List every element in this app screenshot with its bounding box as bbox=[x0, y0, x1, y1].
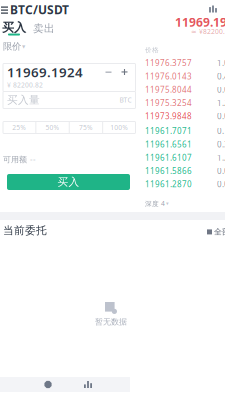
staticText: ¥ 82200.82 bbox=[7, 80, 43, 89]
staticText: 11961.2870 bbox=[145, 179, 192, 189]
button[interactable]: 买入 bbox=[7, 174, 130, 190]
staticText: 11976.3757 bbox=[145, 58, 192, 68]
staticText: 0.0041 bbox=[217, 166, 225, 176]
button[interactable]: 深度 4 bbox=[145, 199, 169, 208]
button[interactable]: 11961.6561 bbox=[139, 140, 225, 149]
button[interactable]: 11975.8044 bbox=[139, 85, 225, 94]
staticText: 0.7713 bbox=[217, 126, 225, 136]
button[interactable]: Settings bbox=[28, 377, 68, 392]
staticText: 50% bbox=[45, 123, 59, 132]
button[interactable]: BTC/USDT market bbox=[1, 4, 69, 15]
button[interactable]: 限价 bbox=[3, 42, 25, 51]
staticText: 买入 bbox=[57, 175, 79, 188]
staticText: 25% bbox=[12, 123, 26, 132]
staticText: 当前委托 bbox=[3, 224, 47, 237]
button[interactable]: 全部 bbox=[207, 227, 225, 237]
button[interactable]: Markets bbox=[68, 377, 108, 392]
staticText: 11961.6561 bbox=[145, 139, 192, 150]
staticText: ≈ ¥82200.82 bbox=[191, 27, 225, 36]
staticText: -- bbox=[30, 154, 36, 165]
staticText: 11969.1924 bbox=[7, 63, 83, 81]
staticText: ▾ bbox=[22, 43, 25, 50]
staticText: 11961.5866 bbox=[145, 166, 192, 176]
staticText: 暂无数据 bbox=[95, 317, 127, 327]
staticText: 11973.9848 bbox=[145, 111, 192, 121]
staticText: 11975.3254 bbox=[145, 98, 192, 108]
staticText: 限价 bbox=[3, 41, 21, 52]
staticText: 0.4011 bbox=[217, 71, 225, 82]
staticText: ▾ bbox=[166, 200, 169, 207]
button[interactable]: 11976.0143 bbox=[139, 72, 225, 81]
staticText: 0.0030 bbox=[217, 111, 225, 121]
button[interactable]: 11961.7071 bbox=[139, 126, 225, 135]
staticText: 深度 4 bbox=[145, 199, 165, 208]
button[interactable]: 50% bbox=[36, 121, 69, 133]
button[interactable]: 11973.9848 bbox=[139, 112, 225, 121]
staticText: 0.0182 bbox=[217, 84, 225, 95]
staticText: 买入 bbox=[2, 20, 26, 35]
staticText: 1.2002 bbox=[217, 152, 225, 163]
button[interactable]: 100% bbox=[103, 121, 135, 133]
staticText: 买入量 bbox=[7, 93, 40, 106]
staticText: 11961.6107 bbox=[145, 152, 192, 163]
button[interactable]: 买入 bbox=[2, 23, 26, 35]
button[interactable]: 75% bbox=[70, 121, 102, 133]
staticText: BTC bbox=[119, 96, 131, 104]
staticText: 1.0245 bbox=[217, 58, 225, 68]
staticText: 1.2092 bbox=[217, 98, 225, 108]
button[interactable]: 25% bbox=[3, 121, 35, 133]
staticText: 可用额 bbox=[3, 155, 27, 164]
staticText: 11969.1924 bbox=[175, 14, 225, 30]
staticText: 75% bbox=[79, 123, 93, 132]
staticText: 11975.8044 bbox=[145, 84, 192, 95]
staticText: 0.3044 bbox=[217, 139, 225, 150]
button[interactable]: Decrease price bbox=[100, 63, 116, 80]
staticText: 卖出 bbox=[33, 22, 55, 35]
button[interactable]: 11961.2870 bbox=[139, 180, 225, 189]
staticText: 100% bbox=[110, 123, 128, 132]
button[interactable]: Increase price bbox=[116, 63, 132, 80]
button[interactable]: 11961.6107 bbox=[139, 153, 225, 162]
staticText: BTC/USDT bbox=[10, 1, 69, 17]
staticText: 11976.0143 bbox=[145, 71, 192, 82]
button[interactable]: 卖出 bbox=[33, 24, 55, 33]
button[interactable]: Chart bbox=[207, 4, 219, 14]
staticText: 全部 bbox=[214, 227, 225, 237]
staticText: 11961.7071 bbox=[145, 126, 192, 136]
button[interactable]: 11975.3254 bbox=[139, 98, 225, 107]
button[interactable]: 11961.5866 bbox=[139, 166, 225, 175]
button[interactable]: 11976.3757 bbox=[139, 58, 225, 67]
staticText: 价格 bbox=[145, 46, 159, 54]
staticText: 0.0090 bbox=[217, 179, 225, 189]
